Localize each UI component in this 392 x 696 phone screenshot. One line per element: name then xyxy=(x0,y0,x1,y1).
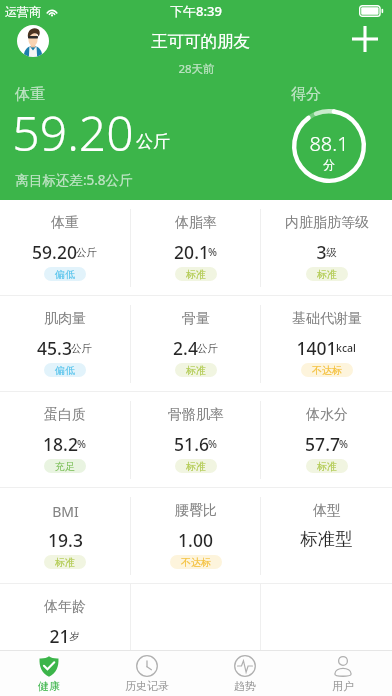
button[interactable]: Profile xyxy=(17,25,49,57)
button[interactable]: 内脏脂肪等级 xyxy=(261,200,392,295)
button[interactable]: 体脂率 xyxy=(130,200,261,295)
staticText: 偏低 xyxy=(55,268,75,281)
staticText: 2.4 xyxy=(173,336,198,356)
staticText: 骨量 xyxy=(182,310,210,328)
button[interactable]: 腰臀比 xyxy=(130,488,261,583)
staticText: % xyxy=(208,245,217,259)
staticText: 公斤 xyxy=(136,131,170,152)
staticText: 内脏脂肪等级 xyxy=(285,214,369,232)
button[interactable]: 体年龄 xyxy=(0,584,130,650)
button[interactable]: 体型 xyxy=(261,488,392,583)
button[interactable]: BMI xyxy=(0,488,130,583)
staticText: 21 xyxy=(49,624,70,644)
button[interactable]: 骨量 xyxy=(130,296,261,391)
staticText: BMI xyxy=(52,502,79,521)
staticText: 得分 xyxy=(291,85,321,104)
staticText: 不达标 xyxy=(181,556,211,569)
staticText: 体脂率 xyxy=(175,214,217,232)
staticText: 岁 xyxy=(69,630,80,643)
button[interactable]: 健康 xyxy=(0,651,98,696)
button[interactable]: 基础代谢量 xyxy=(261,296,392,391)
staticText: 公斤 xyxy=(76,246,97,259)
staticText: 体重 xyxy=(51,214,79,232)
staticText: kcal xyxy=(336,341,356,355)
staticText: 下午8:39 xyxy=(170,2,222,20)
staticText: 公斤 xyxy=(197,342,218,355)
staticText: 标准 xyxy=(317,268,337,281)
staticText: 历史记录 xyxy=(125,679,169,693)
staticText: 标准 xyxy=(317,460,337,473)
button[interactable]: 历史记录 xyxy=(98,651,196,696)
staticText: 标准型 xyxy=(300,528,353,548)
staticText: % xyxy=(77,437,86,451)
staticText: 肌肉量 xyxy=(44,310,86,328)
staticText: 45.3 xyxy=(37,336,72,356)
staticText: 59.20 xyxy=(32,240,77,260)
staticText: 蛋白质 xyxy=(44,406,86,424)
staticText: 1401 xyxy=(296,336,337,356)
staticText: 88.1 xyxy=(309,130,349,157)
staticText: 标准 xyxy=(186,268,206,281)
staticText: 1.00 xyxy=(178,528,213,548)
staticText: 公斤 xyxy=(71,342,92,355)
staticText: 体型 xyxy=(313,502,341,520)
staticText: 用户 xyxy=(332,679,354,693)
staticText: 18.2 xyxy=(43,432,78,452)
staticText: 28天前 xyxy=(178,61,215,77)
staticText: 20.1 xyxy=(174,240,209,260)
staticText: 充足 xyxy=(55,460,75,473)
staticText: 级 xyxy=(326,246,337,259)
staticText: 体年龄 xyxy=(44,598,86,616)
staticText: 体重 xyxy=(15,85,45,104)
staticText: 3 xyxy=(316,240,327,260)
button[interactable]: 蛋白质 xyxy=(0,392,130,487)
button[interactable]: Add record xyxy=(345,22,385,56)
staticText: 离目标还差:5.8公斤 xyxy=(15,171,133,189)
staticText: 标准 xyxy=(186,364,206,377)
staticText: 19.3 xyxy=(48,528,83,548)
staticText: 偏低 xyxy=(55,364,75,377)
staticText: 王可可的朋友 xyxy=(151,31,250,52)
button[interactable]: 体重 xyxy=(0,200,130,295)
button[interactable]: 趋势 xyxy=(196,651,294,696)
button[interactable]: 骨骼肌率 xyxy=(130,392,261,487)
button[interactable]: 体水分 xyxy=(261,392,392,487)
staticText: 腰臀比 xyxy=(175,502,217,520)
staticText: 51.6 xyxy=(174,432,209,452)
button[interactable]: 用户 xyxy=(294,651,392,696)
staticText: 59.20 xyxy=(12,100,134,165)
staticText: 标准 xyxy=(186,460,206,473)
staticText: 基础代谢量 xyxy=(292,310,362,328)
staticText: 不达标 xyxy=(312,364,342,377)
button[interactable]: 肌肉量 xyxy=(0,296,130,391)
staticText: 骨骼肌率 xyxy=(168,406,224,424)
staticText: % xyxy=(339,437,348,451)
staticText: 标准 xyxy=(55,556,75,569)
staticText: 趋势 xyxy=(234,679,256,693)
staticText: % xyxy=(208,437,217,451)
staticText: 体水分 xyxy=(306,406,348,424)
staticText: 57.7 xyxy=(305,432,340,452)
staticText: 分 xyxy=(323,157,335,172)
staticText: 健康 xyxy=(38,679,60,693)
staticText: 运营商 xyxy=(5,4,41,19)
